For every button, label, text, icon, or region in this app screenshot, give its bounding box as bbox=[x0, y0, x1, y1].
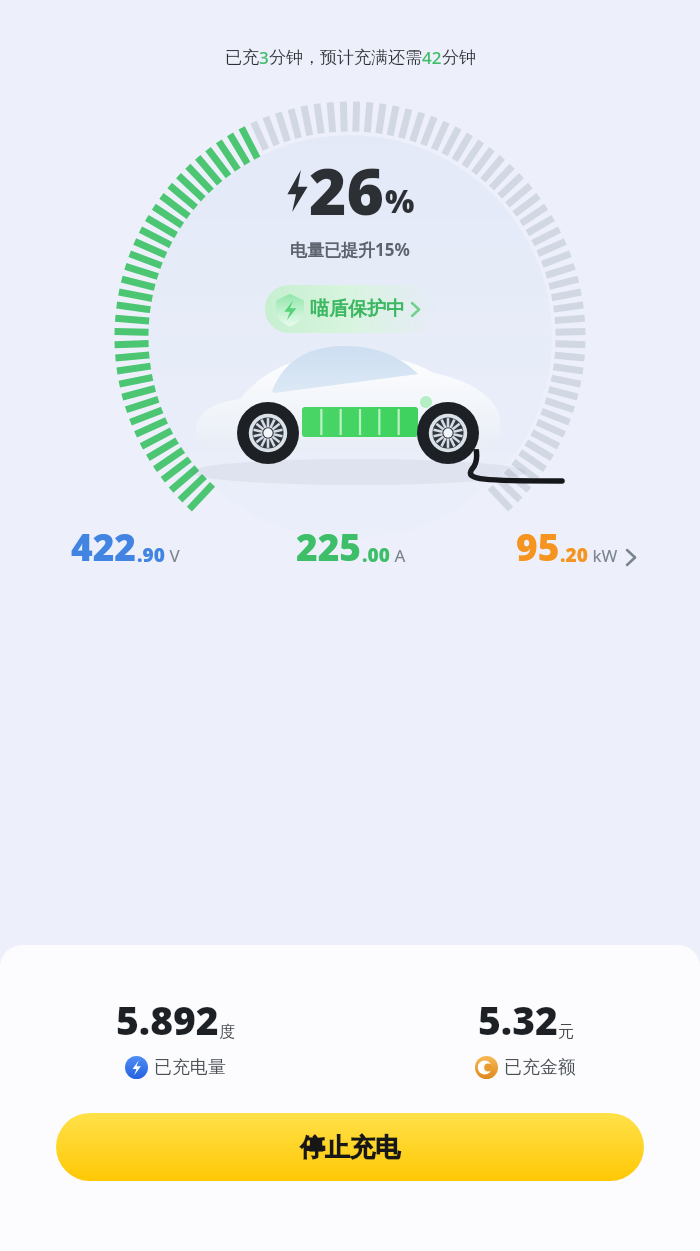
staticText: 停止充电 bbox=[300, 1132, 400, 1163]
staticText: 已充电量 bbox=[154, 1056, 226, 1079]
button[interactable]: 停止充电 bbox=[56, 1113, 644, 1181]
staticText: A bbox=[390, 544, 406, 567]
staticText: % bbox=[385, 180, 415, 222]
staticText: 电量已提升15% bbox=[290, 238, 410, 261]
staticText: 喵盾保护中 bbox=[310, 297, 405, 321]
staticText: 95 bbox=[516, 521, 560, 571]
button[interactable]: 喵盾保护中 bbox=[265, 285, 436, 333]
staticText: 42 bbox=[422, 46, 442, 69]
staticText: 3 bbox=[259, 46, 269, 69]
staticText: 分钟 bbox=[442, 47, 476, 68]
staticText: 已充 bbox=[225, 47, 259, 68]
staticText: 度 bbox=[219, 1022, 235, 1042]
button[interactable]: Power details bbox=[463, 521, 688, 571]
staticText: 225 bbox=[296, 521, 362, 571]
staticText: .20 bbox=[560, 542, 588, 568]
staticText: 5.892 bbox=[116, 993, 219, 1046]
staticText: V bbox=[165, 544, 180, 567]
staticText: 元 bbox=[558, 1022, 574, 1042]
staticText: 已充金额 bbox=[504, 1056, 576, 1079]
staticText: 26 bbox=[309, 147, 385, 234]
staticText: 422 bbox=[71, 521, 137, 571]
staticText: 5.32 bbox=[478, 993, 558, 1046]
staticText: kW bbox=[588, 544, 618, 567]
staticText: 分钟，预计充满还需 bbox=[269, 47, 422, 68]
staticText: .00 bbox=[362, 542, 390, 568]
staticText: .90 bbox=[137, 542, 165, 568]
